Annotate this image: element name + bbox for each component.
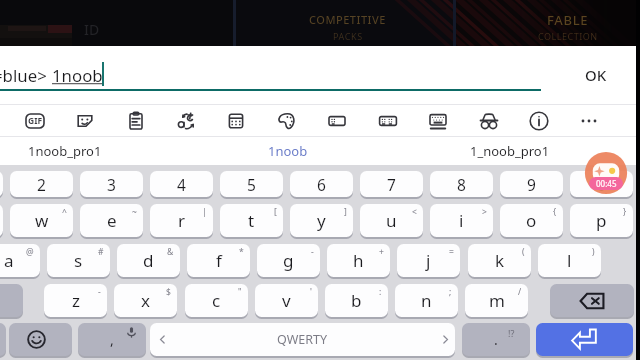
button[interactable]: n (395, 284, 458, 317)
button[interactable]: Translate (168, 105, 204, 136)
button[interactable]: GIF (17, 105, 53, 136)
button[interactable]: Split keyboard (370, 105, 406, 136)
button[interactable] (550, 284, 634, 317)
button[interactable]: More options (571, 105, 607, 136)
button[interactable]: QWERTY (150, 323, 455, 356)
button[interactable]: a (0, 244, 40, 277)
button[interactable]: m (465, 284, 528, 317)
button[interactable]: One-handed keyboard (319, 105, 355, 136)
button[interactable]: x (114, 284, 177, 317)
staticText: d (143, 249, 154, 272)
button[interactable]: 5 (220, 171, 283, 197)
button[interactable]: 1 (0, 171, 3, 197)
staticText: COLLECTION (538, 30, 598, 42)
staticText: - (311, 246, 314, 258)
button[interactable]: j (397, 244, 460, 277)
button[interactable]: u (360, 204, 423, 237)
button[interactable]: 1noob (222, 137, 353, 165)
button[interactable]: o (500, 204, 563, 237)
staticText: | (202, 206, 207, 218)
button[interactable]: v (255, 284, 318, 317)
button[interactable]: i (430, 204, 493, 237)
button[interactable]: Incognito mode (471, 105, 507, 136)
button[interactable]: Floating keyboard (420, 105, 456, 136)
button[interactable]: 8 (430, 171, 493, 197)
button[interactable]: Info (521, 105, 557, 136)
button[interactable] (9, 323, 72, 356)
button[interactable]: w (10, 204, 73, 237)
button[interactable]: r (150, 204, 213, 237)
button[interactable]: Stickers (67, 105, 103, 136)
staticText: s (74, 249, 83, 272)
button[interactable]: h (327, 244, 390, 277)
staticText: 00:45 (596, 178, 617, 189)
other: Symbols (0, 165, 61, 200)
button[interactable]: Settings (218, 105, 254, 136)
button[interactable]: 2 (10, 171, 73, 197)
staticText: ^ (62, 206, 67, 218)
staticText: ID (84, 20, 100, 39)
button[interactable]: k (468, 244, 531, 277)
staticText: f (216, 249, 222, 272)
button[interactable]: 9 (500, 171, 563, 197)
button[interactable]: f (187, 244, 250, 277)
button[interactable]: 4 (150, 171, 213, 197)
staticText: !? (508, 327, 515, 339)
staticText: COMPETITIVE (309, 12, 386, 27)
button[interactable]: 3 (80, 171, 143, 197)
staticText: = (449, 246, 454, 258)
button[interactable]: 1_noob_pro1 (444, 137, 575, 165)
button[interactable]: Game booster timer (589, 177, 623, 190)
button[interactable]: q (0, 204, 3, 237)
button[interactable]: c (185, 284, 248, 317)
staticText: } (623, 206, 627, 218)
button[interactable]: OK (552, 46, 640, 104)
button[interactable]: b (325, 284, 388, 317)
staticText: ; (449, 286, 452, 298)
staticText: u (386, 209, 397, 232)
staticText: QWERTY (277, 331, 328, 348)
button[interactable] (0, 323, 6, 356)
button[interactable]: 1noob_pro1 (0, 137, 129, 165)
staticText: x (141, 289, 150, 312)
staticText: t (248, 209, 255, 232)
staticText: =blue> (0, 64, 52, 87)
button[interactable]: z (44, 284, 107, 317)
button[interactable]: p (570, 204, 633, 237)
staticText: 4 (177, 174, 186, 195)
staticText: > (482, 206, 487, 218)
button[interactable]: t (220, 204, 283, 237)
button[interactable]: 0 (570, 171, 633, 197)
staticText: , (110, 330, 114, 349)
button[interactable]: 6 (290, 171, 353, 197)
button[interactable] (0, 284, 23, 317)
staticText: g (283, 249, 294, 272)
button[interactable] (536, 323, 633, 356)
button[interactable]: s (47, 244, 110, 277)
staticText: r (178, 209, 186, 232)
button[interactable]: g (257, 244, 320, 277)
staticText: j (426, 249, 431, 272)
staticText: [ (274, 206, 277, 218)
staticText: 5 (247, 174, 256, 195)
staticText: 8 (457, 174, 466, 195)
staticText: 0 (597, 174, 606, 195)
staticText: e (107, 209, 117, 232)
button[interactable]: Themes (269, 105, 305, 136)
staticText: ( (522, 246, 525, 258)
button[interactable]: y (290, 204, 353, 237)
button[interactable]: e (80, 204, 143, 237)
button[interactable]: . (462, 323, 530, 356)
staticText: a (4, 249, 14, 272)
button[interactable]: Clipboard (118, 105, 154, 136)
button[interactable]: d (117, 244, 180, 277)
button[interactable]: l (538, 244, 601, 277)
button[interactable]: 7 (360, 171, 423, 197)
staticText: l (567, 249, 572, 272)
button[interactable]: , (78, 323, 146, 356)
staticText: & (167, 246, 174, 258)
staticText: FABLE (547, 11, 589, 29)
staticText: 3 (107, 174, 116, 195)
staticText: < (412, 206, 417, 218)
staticText: 1_noob_pro1 (470, 142, 550, 160)
